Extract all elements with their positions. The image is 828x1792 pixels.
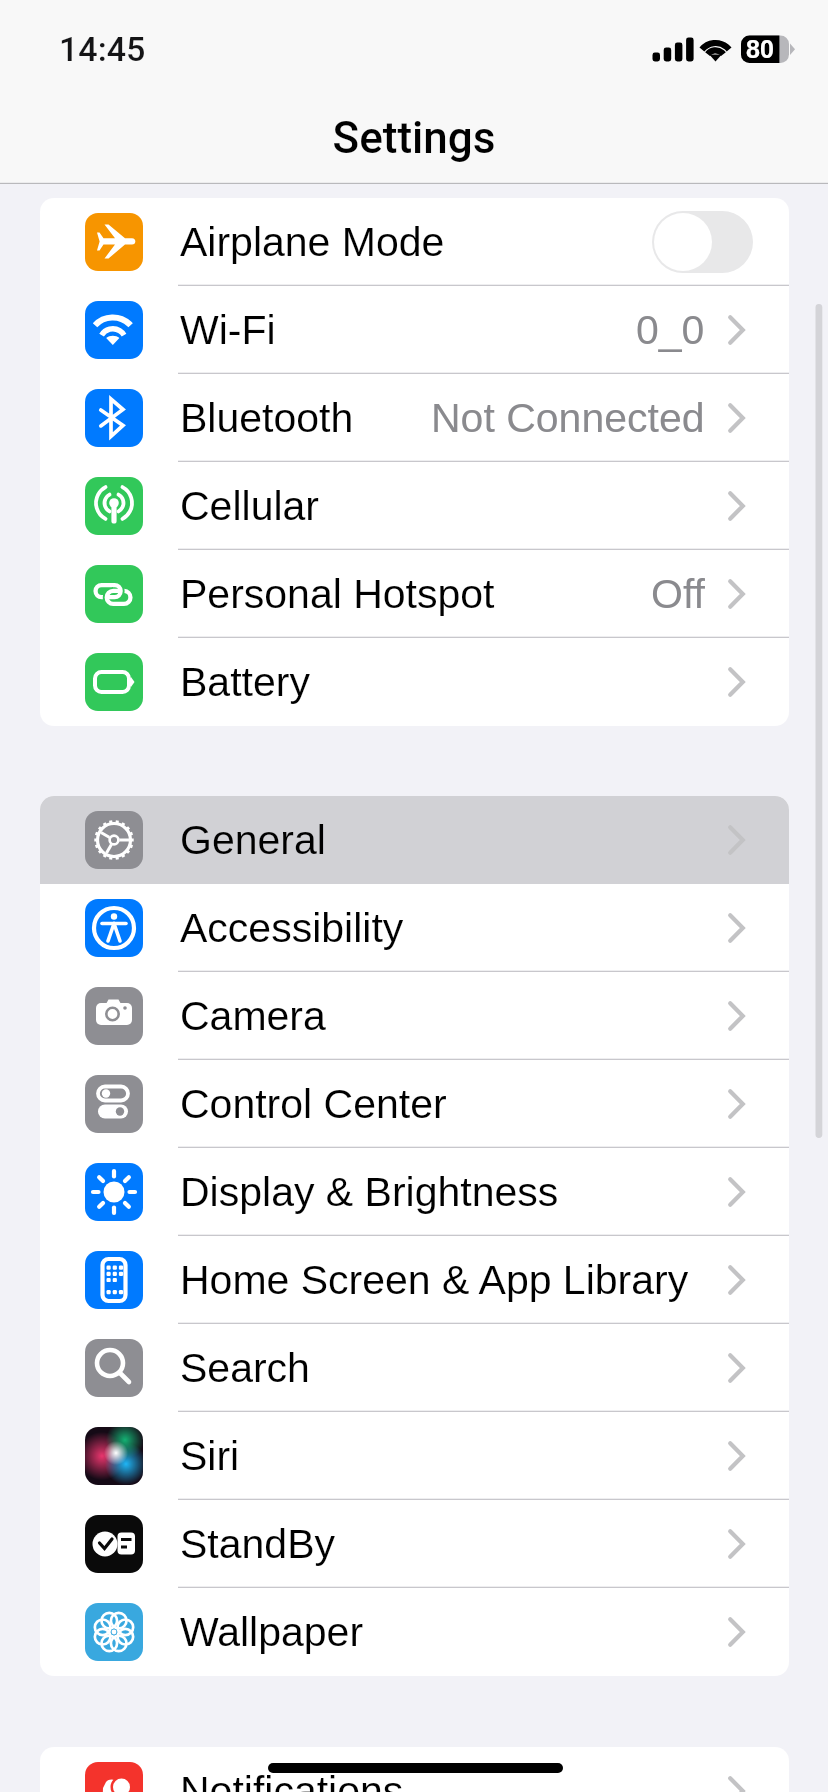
button[interactable]: Control Center (40, 1060, 789, 1148)
staticText: Off (651, 571, 705, 617)
button[interactable]: Bluetooth (40, 374, 789, 462)
staticText: Settings (0, 112, 828, 164)
button[interactable]: Home Screen & App Library (40, 1236, 789, 1324)
button[interactable]: General (40, 796, 789, 884)
button[interactable]: Airplane Mode (40, 198, 789, 286)
button[interactable]: Personal Hotspot (40, 550, 789, 638)
button[interactable]: Wallpaper (40, 1588, 789, 1676)
staticText: Airplane Mode (180, 219, 445, 265)
button[interactable]: Camera (40, 972, 789, 1060)
button[interactable]: Notifications (40, 1747, 789, 1792)
staticText: Home Screen & App Library (180, 1257, 689, 1303)
staticText: Notifications (180, 1768, 404, 1792)
button[interactable]: Cellular (40, 462, 789, 550)
staticText: Wallpaper (180, 1609, 364, 1655)
button[interactable]: Accessibility (40, 884, 789, 972)
staticText: General (180, 817, 326, 863)
staticText: Not Connected (431, 395, 705, 441)
staticText: Display & Brightness (180, 1169, 559, 1215)
staticText: 0_0 (636, 307, 705, 353)
button[interactable]: Airplane Mode toggle, off (652, 211, 753, 273)
staticText: Bluetooth (180, 395, 354, 441)
staticText: 80 (746, 35, 774, 63)
button[interactable]: Battery (40, 638, 789, 726)
staticText: Search (180, 1345, 310, 1391)
button[interactable]: StandBy (40, 1500, 789, 1588)
staticText: StandBy (180, 1521, 335, 1567)
staticText: 14:45 (59, 29, 146, 69)
staticText: Cellular (180, 483, 319, 529)
staticText: Siri (180, 1433, 240, 1479)
staticText: Control Center (180, 1081, 447, 1127)
staticText: Personal Hotspot (180, 571, 495, 617)
staticText: Camera (180, 993, 326, 1039)
button[interactable]: Display & Brightness (40, 1148, 789, 1236)
staticText: Accessibility (180, 905, 404, 951)
button[interactable]: Siri (40, 1412, 789, 1500)
staticText: Battery (180, 659, 310, 705)
button[interactable]: Search (40, 1324, 789, 1412)
button[interactable]: Wi-Fi (40, 286, 789, 374)
staticText: Wi-Fi (180, 307, 276, 353)
